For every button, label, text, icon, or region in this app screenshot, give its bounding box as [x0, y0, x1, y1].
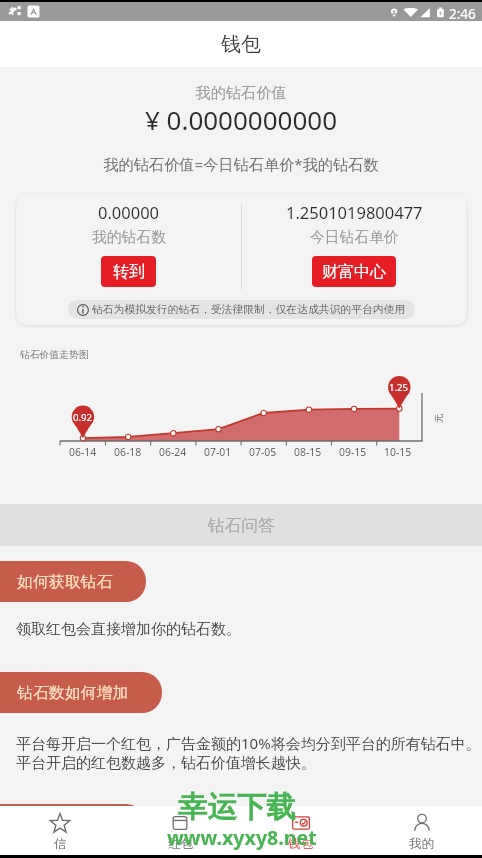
staticText: 红包从哪里来 — [17, 815, 113, 835]
staticText: 钱包 — [288, 836, 313, 852]
staticText: 钻石问答 — [208, 515, 275, 536]
staticText: 钻石数如何增加 — [17, 683, 129, 703]
staticText: 0.00000 — [98, 201, 160, 223]
button[interactable]: 如何获取钻石 — [0, 561, 146, 602]
button[interactable]: 钱包 — [240, 806, 361, 855]
staticText: 1.2501019800477 — [286, 201, 423, 223]
staticText: 2:46 — [449, 5, 476, 23]
button[interactable]: 信 — [0, 806, 120, 855]
staticText: 平台开启的红包数越多，钻石价值增长越快。 — [16, 754, 316, 773]
staticText: 元 — [433, 413, 445, 423]
staticText: 平台每开启一个红包，广告金额的10%将会均分到平台的所有钻石中。 — [16, 733, 481, 753]
staticText: 08-15 — [294, 445, 322, 459]
staticText: 0.92 — [73, 411, 93, 424]
button[interactable]: 红包从哪里来 — [0, 804, 146, 845]
staticText: www.xyxy8.net — [167, 824, 317, 851]
staticText: 我的钻石价值 — [0, 83, 482, 102]
button[interactable]: 财富中心 — [312, 256, 396, 287]
staticText: 09-15 — [339, 445, 367, 459]
staticText: 07-05 — [249, 445, 277, 459]
staticText: 红包 — [168, 836, 193, 852]
button[interactable]: 钻石数如何增加 — [0, 672, 162, 713]
staticText: ¥ 0.0000000000 — [0, 102, 482, 137]
staticText: 钻石为模拟发行的钻石，受法律限制，仅在达成共识的平台内使用 — [92, 303, 406, 317]
button[interactable]: 红包 — [120, 806, 240, 855]
staticText: 06-18 — [114, 445, 142, 459]
staticText: 信 — [54, 836, 67, 852]
staticText: 我的钻石价值=今日钻石单价*我的钻石数 — [0, 154, 482, 175]
staticText: 财富中心 — [322, 262, 386, 282]
staticText: 今日钻石单价 — [310, 228, 399, 247]
staticText: 06-14 — [69, 445, 97, 459]
staticText: 1.25 — [389, 381, 409, 394]
staticText: 钻石价值走势图 — [20, 349, 89, 361]
staticText: 10-15 — [384, 445, 412, 459]
staticText: 我的钻石数 — [92, 228, 166, 247]
staticText: 如何获取钻石 — [17, 572, 113, 592]
staticText: 钱包 — [221, 32, 261, 57]
staticText: 我的 — [409, 836, 434, 852]
staticText: 幸运下载 — [178, 789, 296, 826]
button[interactable]: 我的 — [361, 806, 482, 855]
button[interactable]: 转到 — [101, 256, 156, 287]
staticText: 转到 — [113, 262, 145, 282]
staticText: 07-01 — [204, 445, 232, 459]
staticText: 06-24 — [159, 445, 187, 459]
staticText: 领取红包会直接增加你的钻石数。 — [16, 620, 241, 639]
